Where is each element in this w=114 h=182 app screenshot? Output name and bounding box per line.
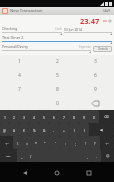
staticText: ~[< — [5, 141, 9, 144]
staticText: : — [65, 141, 66, 145]
button[interactable]: ; — [70, 136, 80, 149]
button[interactable]: 3 — [76, 55, 114, 68]
button[interactable]: Details — [93, 46, 112, 52]
staticText: SAVE — [103, 9, 111, 13]
button[interactable]: 2 — [9, 110, 19, 123]
staticText: ◀ — [100, 128, 103, 132]
button[interactable]: Expense — [102, 18, 107, 23]
button[interactable]: % — [29, 123, 39, 136]
staticText: @ — [3, 128, 6, 132]
button[interactable]: 5 — [38, 68, 76, 82]
button[interactable]: 03 Jun 2014 — [64, 27, 112, 35]
staticText: / — [30, 154, 32, 158]
button[interactable]: / — [26, 149, 35, 162]
button[interactable]: Backspace — [99, 110, 114, 123]
button[interactable]: Delete — [76, 96, 114, 110]
button[interactable]: 6 — [49, 110, 59, 123]
button[interactable]: 9 — [76, 82, 114, 96]
staticText: 0 — [56, 100, 59, 107]
button[interactable]: 4 — [29, 110, 39, 123]
staticText: ( — [74, 128, 75, 132]
button[interactable]: € — [19, 123, 29, 136]
staticText: ⌫ — [104, 115, 109, 119]
staticText: ; — [75, 141, 76, 145]
staticText: New Transaction — [10, 8, 43, 14]
button[interactable]: 7 — [59, 110, 69, 123]
button[interactable]: ~[< — [0, 136, 13, 149]
button[interactable]: Back — [18, 168, 32, 177]
button[interactable]: Checking — [2, 26, 62, 35]
button[interactable]: * — [31, 136, 40, 149]
staticText: 8 — [73, 115, 75, 119]
staticText: Personal/Dining — [2, 44, 28, 49]
button[interactable]: Recents — [82, 168, 96, 177]
staticText: 9 — [94, 86, 97, 93]
button[interactable]: 0 — [38, 96, 76, 110]
button[interactable]: ABC — [0, 149, 17, 162]
button[interactable]: Personal/Dining — [2, 44, 91, 53]
staticText: 9 — [83, 115, 85, 119]
button[interactable]: ( — [69, 123, 79, 136]
button[interactable]: \ — [13, 136, 22, 149]
button[interactable]: @ — [0, 123, 9, 136]
button[interactable]: _ — [17, 149, 26, 162]
button[interactable]: Emoji — [101, 149, 114, 162]
staticText: 5 — [56, 72, 59, 79]
staticText: ☺ — [106, 154, 110, 158]
button[interactable]: ! — [80, 136, 90, 149]
staticText: 23.47 — [80, 16, 100, 26]
staticText: 3 — [94, 58, 97, 65]
button[interactable]: 3 — [19, 110, 29, 123]
staticText: % — [33, 128, 36, 132]
staticText: . — [96, 154, 97, 158]
button[interactable]: Up — [2, 8, 8, 14]
button[interactable]: 4 — [0, 68, 38, 82]
button[interactable]: 1 — [0, 110, 9, 123]
button[interactable]: SAVE — [102, 8, 112, 14]
button[interactable]: & — [39, 123, 49, 136]
staticText: " — [44, 141, 46, 145]
button[interactable]: + — [59, 123, 69, 136]
staticText: 0 — [93, 115, 95, 119]
button[interactable]: = — [22, 136, 31, 149]
button[interactable]: 9 — [79, 110, 89, 123]
button[interactable]: 2 — [38, 55, 76, 68]
button[interactable]: - — [49, 123, 59, 136]
staticText: ABC — [6, 154, 11, 157]
button[interactable]: 1 — [0, 55, 38, 68]
staticText: - — [53, 128, 55, 132]
button[interactable]: Home — [50, 168, 64, 177]
staticText: \ — [17, 141, 19, 145]
button[interactable]: : — [60, 136, 70, 149]
button[interactable]: 7 — [0, 82, 38, 96]
staticText: 5 — [43, 115, 45, 119]
button[interactable]: Thai Diner 2 — [2, 35, 112, 44]
staticText: 8 — [56, 86, 59, 93]
button[interactable]: ) — [79, 123, 89, 136]
button[interactable]: 8 — [69, 110, 79, 123]
button[interactable]: , — [83, 149, 92, 162]
button[interactable]: ' — [50, 136, 60, 149]
button[interactable]: ? — [90, 136, 100, 149]
staticText: ~[< — [105, 141, 109, 144]
staticText: 2 — [13, 115, 15, 119]
button[interactable]: 6 — [76, 68, 114, 82]
button[interactable]: " — [40, 136, 50, 149]
button[interactable]: 8 — [38, 82, 76, 96]
staticText: 7 — [18, 86, 21, 93]
staticText: = — [26, 141, 28, 145]
button[interactable]: 0 — [89, 110, 99, 123]
staticText: Thai Diner 2 — [2, 35, 24, 40]
button[interactable]: ~[< — [100, 136, 114, 149]
button[interactable]: Voice — [89, 123, 114, 136]
staticText: 7 — [63, 115, 65, 119]
button[interactable]: Income — [107, 18, 112, 23]
button[interactable]: . — [92, 149, 101, 162]
button[interactable]: 5 — [39, 110, 49, 123]
staticText: € — [23, 128, 25, 132]
staticText: 1 — [18, 58, 21, 65]
button[interactable]: # — [9, 123, 19, 136]
